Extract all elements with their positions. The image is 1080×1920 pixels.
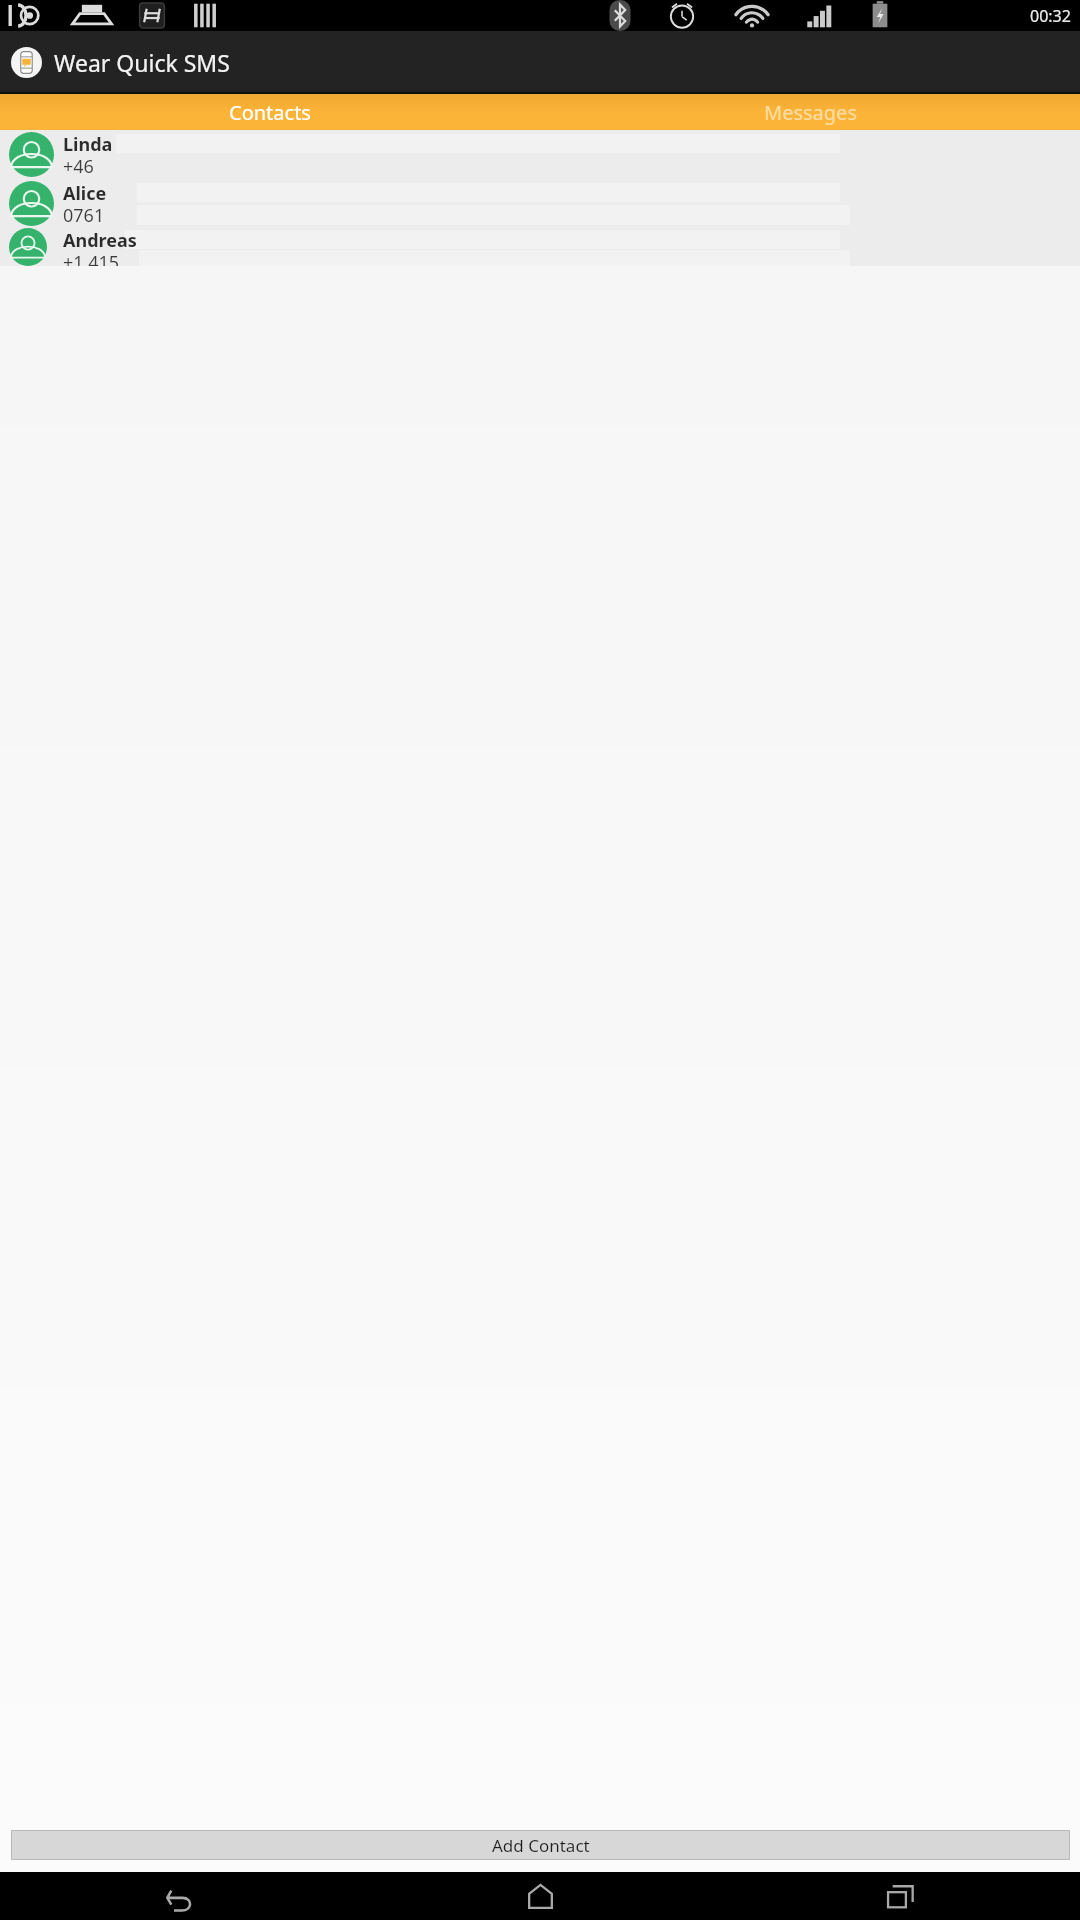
staticText: 00:32 [1030, 5, 1071, 27]
staticText: Messages [764, 99, 857, 126]
staticText: +46 [63, 154, 94, 177]
staticText: Add Contact [492, 1834, 590, 1857]
button[interactable]: Linda [0, 130, 1080, 179]
button[interactable]: Contacts [0, 94, 540, 130]
other: App icon [11, 47, 42, 78]
staticText: 0761 [63, 203, 105, 226]
button[interactable]: Alice [0, 179, 1080, 228]
button[interactable]: Recent apps [720, 1872, 1080, 1920]
button[interactable]: Messages [540, 94, 1080, 130]
button[interactable]: Back [0, 1872, 360, 1920]
staticText: Linda [63, 132, 113, 154]
button[interactable]: Home [360, 1872, 720, 1920]
button[interactable]: Andreas [0, 228, 1080, 266]
staticText: Wear Quick SMS [54, 47, 230, 78]
button[interactable]: Add Contact [11, 1830, 1070, 1860]
staticText: Alice [63, 181, 107, 203]
staticText: Andreas [63, 228, 137, 250]
staticText: +1 415 [63, 250, 120, 266]
staticText: Contacts [229, 99, 311, 126]
